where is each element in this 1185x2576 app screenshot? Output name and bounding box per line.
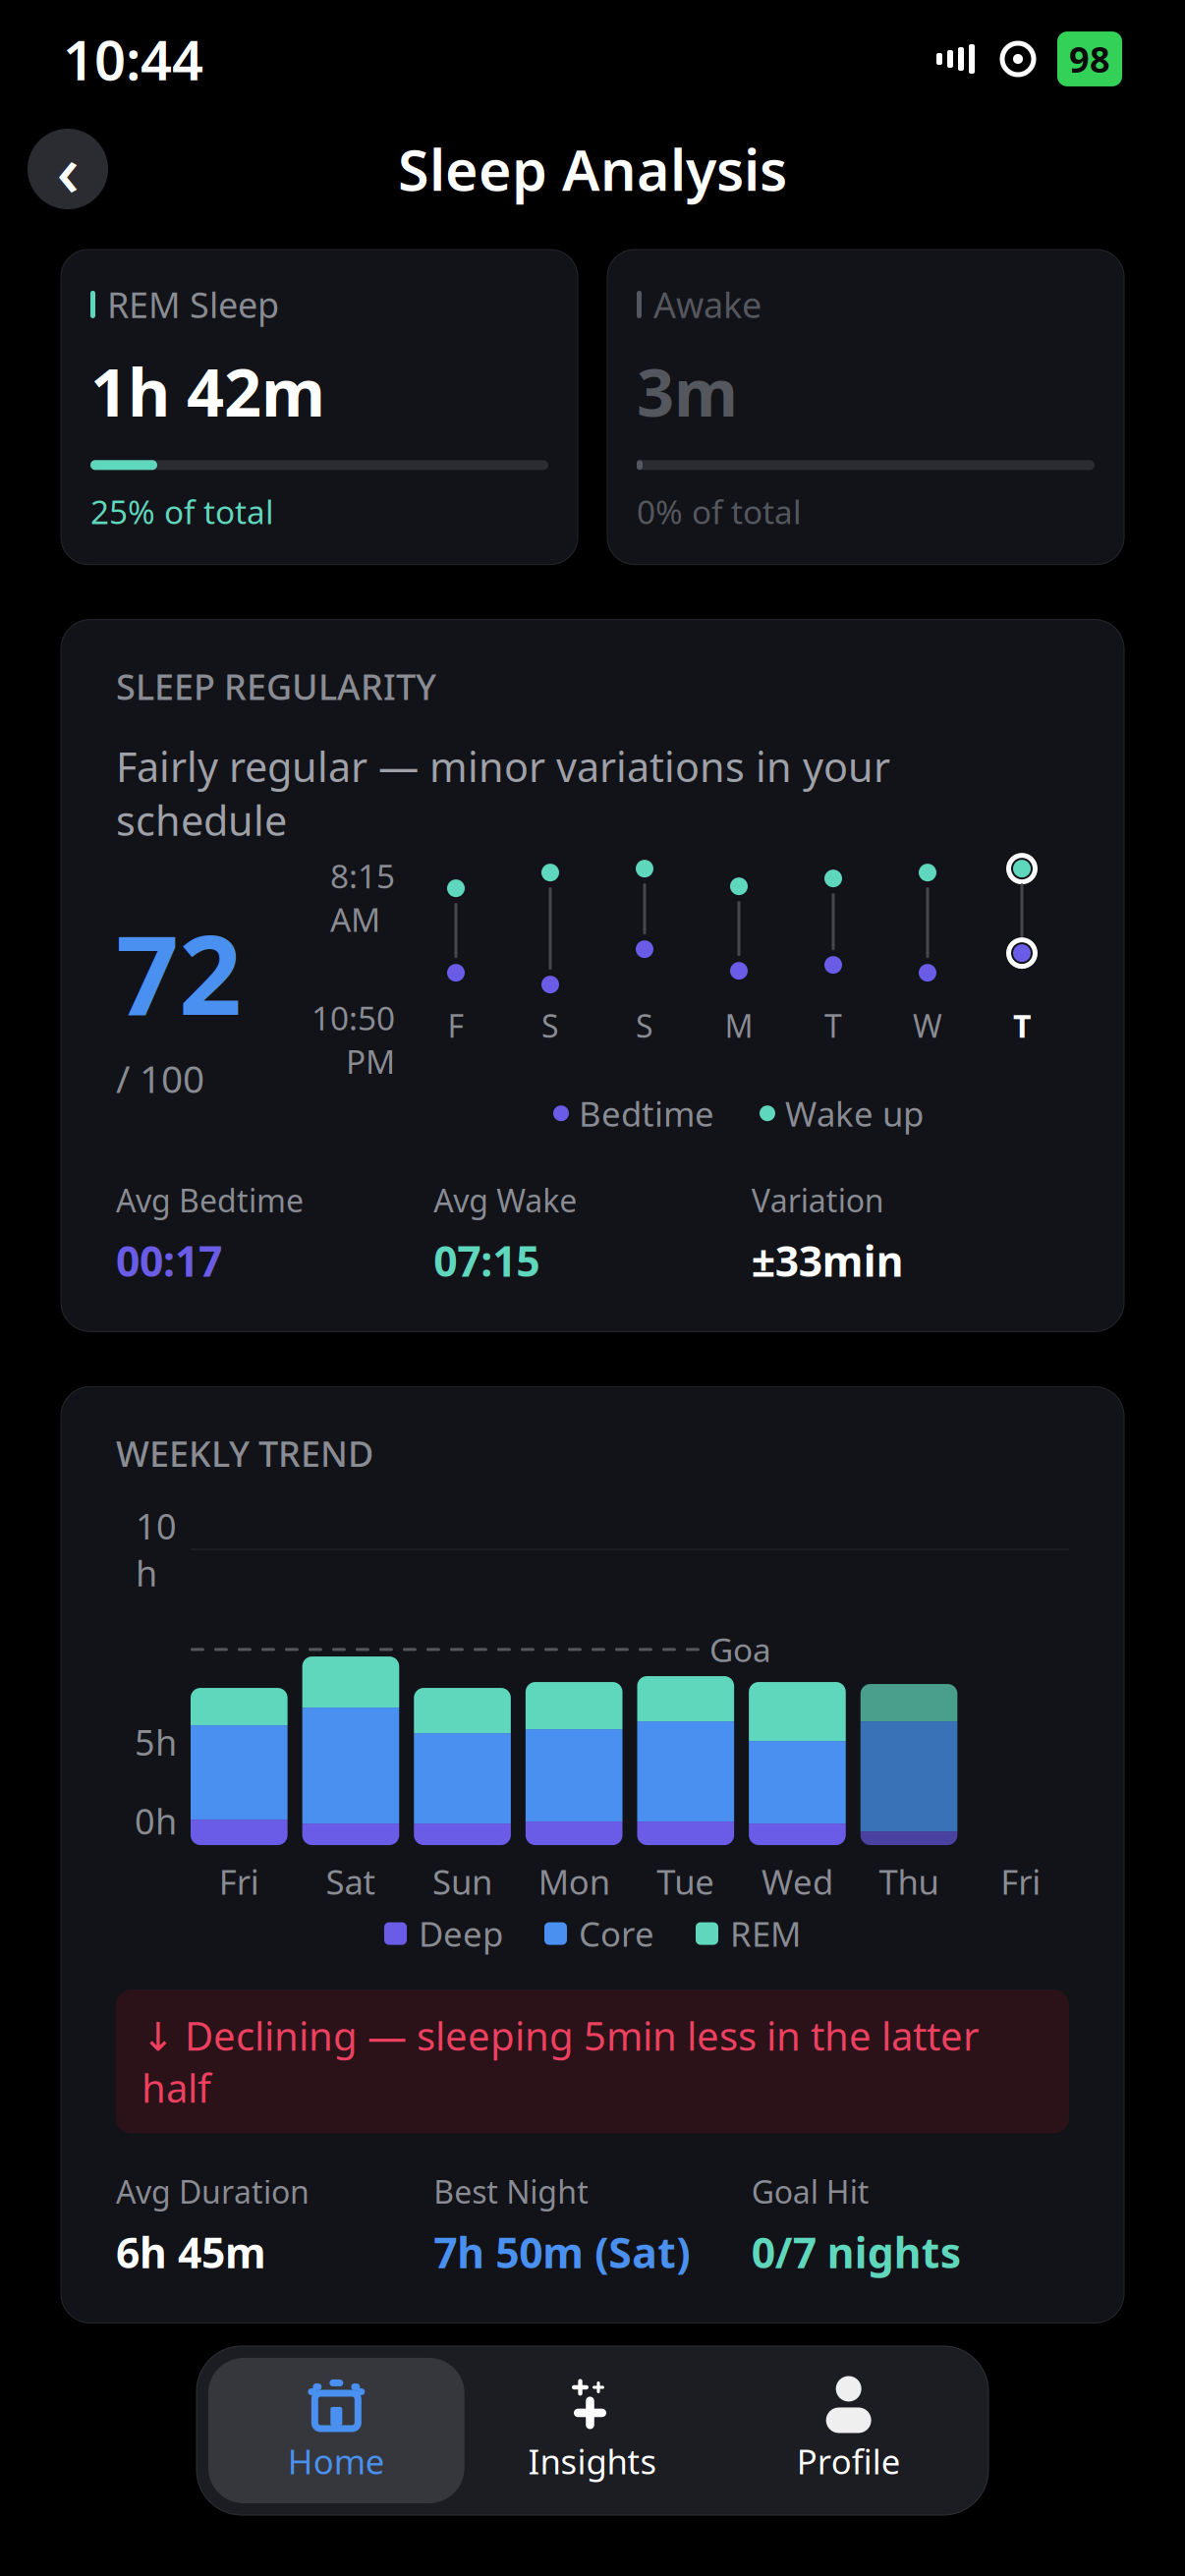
staticText: T	[824, 1005, 842, 1046]
staticText: 10h	[136, 1502, 177, 1596]
staticText: Sleep Analysis	[398, 132, 787, 206]
staticText: 6h 45m	[116, 2224, 266, 2280]
staticText: Goa	[709, 1628, 771, 1671]
staticText: 0/7 nights	[751, 2224, 961, 2280]
button[interactable]: Profile	[721, 2358, 977, 2503]
staticText: ↓ Declining — sleeping 5min less in the …	[141, 2009, 980, 2114]
staticText: Home	[288, 2438, 385, 2484]
staticText: Profile	[797, 2438, 901, 2484]
staticText: Fairly regular — minor variations in you…	[116, 739, 890, 847]
staticText: Bedtime	[579, 1091, 714, 1136]
staticText: Best Night	[434, 2171, 589, 2212]
staticText: 10:50	[311, 996, 395, 1039]
staticText: Wake up	[785, 1091, 924, 1136]
staticText: Mon	[538, 1859, 610, 1904]
staticText: / 100	[116, 1053, 204, 1103]
staticText: Sun	[432, 1859, 492, 1904]
staticText: Thu	[879, 1859, 939, 1904]
staticText: Avg Bedtime	[116, 1179, 304, 1221]
staticText: Variation	[751, 1179, 884, 1221]
staticText: ±33min	[751, 1233, 904, 1288]
staticText: S	[541, 1005, 559, 1046]
staticText: 7h 50m (Sat)	[434, 2224, 690, 2280]
staticText: 98	[1069, 35, 1110, 82]
staticText: 00:17	[116, 1233, 222, 1288]
staticText: 3m	[637, 348, 738, 435]
staticText: WEEKLY TREND	[116, 1430, 373, 1477]
staticText: Avg Wake	[434, 1179, 577, 1221]
button[interactable]: Home	[208, 2358, 464, 2503]
staticText: Sat	[326, 1859, 376, 1904]
staticText: F	[448, 1005, 464, 1046]
staticText: 1h 42m	[90, 348, 325, 435]
staticText: Wed	[761, 1859, 833, 1904]
button[interactable]: Back	[28, 129, 108, 209]
staticText: SLEEP REGULARITY	[116, 663, 436, 710]
staticText: S	[636, 1005, 653, 1046]
staticText: Goal Hit	[751, 2171, 869, 2212]
staticText: 8:15 AM	[330, 854, 395, 941]
staticText: M	[725, 1005, 753, 1046]
staticText: 0% of total	[637, 490, 802, 533]
staticText: Deep	[419, 1911, 503, 1956]
staticText: Insights	[528, 2438, 657, 2484]
staticText: REM	[730, 1911, 801, 1956]
staticText: 25% of total	[90, 490, 274, 533]
staticText: 72	[116, 899, 242, 1045]
staticText: 5h	[135, 1718, 177, 1765]
staticText: Fri	[219, 1859, 259, 1904]
staticText: PM	[346, 1039, 395, 1083]
staticText: Tue	[657, 1859, 715, 1904]
button[interactable]: Insights	[464, 2358, 721, 2503]
staticText: 0h	[135, 1797, 177, 1844]
staticText: W	[913, 1005, 942, 1046]
staticText: Fri	[1000, 1859, 1041, 1904]
staticText: ‹	[56, 122, 79, 216]
staticText: Core	[579, 1911, 654, 1956]
staticText: REM Sleep	[107, 281, 279, 328]
staticText: 07:15	[434, 1233, 540, 1288]
staticText: Awake	[653, 281, 762, 328]
staticText: 10:44	[63, 22, 203, 95]
staticText: T	[1013, 1005, 1031, 1046]
staticText: Avg Duration	[116, 2171, 310, 2212]
